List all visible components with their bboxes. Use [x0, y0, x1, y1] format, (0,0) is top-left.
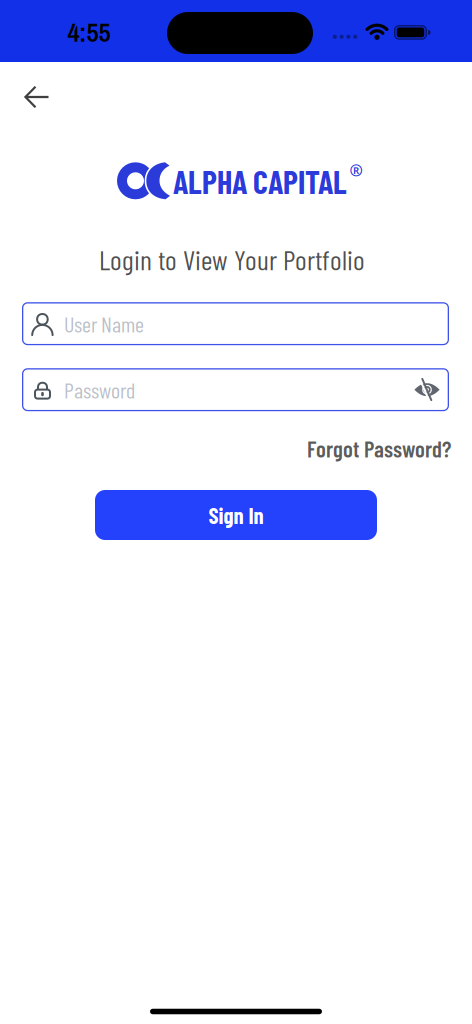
staticText: ® — [349, 159, 362, 181]
button[interactable]: User Name — [22, 302, 449, 345]
staticText: Password — [64, 376, 135, 403]
button[interactable]: Forgot Password? — [307, 435, 451, 462]
staticText: Sign In — [208, 501, 263, 529]
button[interactable]: Sign In — [95, 490, 377, 540]
button[interactable] — [414, 379, 440, 401]
button[interactable] — [17, 79, 57, 115]
staticText: ALPHA CAPITAL — [173, 162, 347, 200]
staticText: 4:55 — [67, 14, 110, 50]
staticText: Forgot Password? — [307, 435, 451, 462]
staticText: Login to View Your Portfolio — [99, 242, 365, 276]
button[interactable]: Password — [22, 368, 449, 411]
staticText: User Name — [64, 310, 144, 337]
